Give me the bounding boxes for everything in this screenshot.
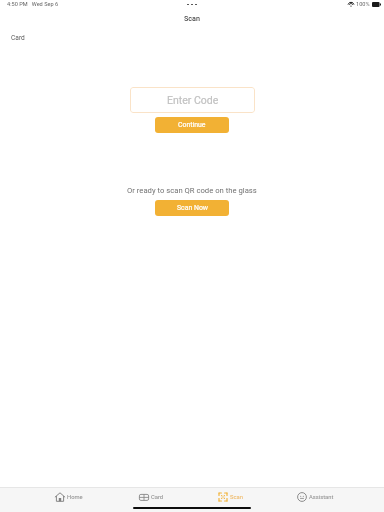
staticText: 100% xyxy=(356,1,370,8)
staticText: Assistant xyxy=(309,494,334,501)
button[interactable]: Card xyxy=(131,488,173,507)
button[interactable]: Assistant xyxy=(289,488,339,507)
staticText: Card xyxy=(11,34,25,42)
staticText: 4:50 PM Wed Sep 6 xyxy=(7,1,59,8)
button[interactable]: Scan xyxy=(210,488,252,507)
staticText: Or ready to scan QR code on the glass xyxy=(127,186,257,195)
button[interactable]: Enter Code xyxy=(130,87,255,113)
staticText: Scan Now xyxy=(177,204,208,212)
staticText: Scan xyxy=(230,494,243,501)
staticText: Continue xyxy=(178,121,206,129)
button[interactable]: Home xyxy=(47,488,92,507)
button[interactable]: Scan Now xyxy=(155,200,229,216)
button[interactable]: Continue xyxy=(155,117,229,133)
staticText: Enter Code xyxy=(167,94,219,106)
staticText: Scan xyxy=(184,14,200,22)
staticText: Home xyxy=(67,494,83,501)
staticText: Card xyxy=(151,494,164,501)
